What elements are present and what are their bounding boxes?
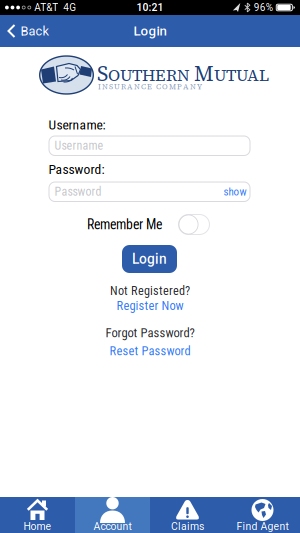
staticText: R — [121, 82, 126, 92]
staticText: Register Now — [116, 298, 183, 313]
staticText: Password — [54, 185, 101, 199]
staticText: C — [141, 82, 146, 92]
staticText: Username: — [48, 117, 105, 133]
staticText: U — [114, 82, 120, 92]
staticText: Reset Password — [109, 344, 190, 358]
staticText: 96% — [254, 2, 273, 13]
staticText: Find Agent — [236, 520, 288, 533]
staticText: A — [127, 82, 133, 92]
staticText: AT&T — [34, 2, 58, 13]
staticText: N — [134, 82, 140, 92]
button[interactable]: Login — [122, 245, 177, 273]
button[interactable]: Back — [0, 15, 54, 47]
staticText: A — [183, 82, 189, 92]
staticText: SOUTHERN MUTUAL — [97, 59, 269, 88]
staticText: N — [190, 82, 196, 92]
staticText: 10:21 — [136, 1, 163, 14]
staticText: P — [177, 82, 182, 92]
staticText: Login — [132, 251, 167, 267]
button[interactable]: Home — [0, 497, 75, 533]
staticText: S — [109, 82, 113, 92]
button[interactable]: Claims — [150, 497, 225, 533]
staticText: E — [147, 82, 152, 92]
staticText: M — [169, 82, 176, 92]
staticText: Account — [93, 520, 131, 533]
button[interactable]: Account — [75, 497, 150, 533]
staticText: Forgot Password? — [105, 325, 194, 340]
button[interactable]: Reset Password — [106, 341, 193, 361]
button[interactable]: Remember Me — [178, 214, 210, 235]
button[interactable]: Register Now — [113, 295, 186, 316]
staticText: C — [156, 82, 161, 92]
staticText: Not Registered? — [110, 284, 190, 298]
staticText: Remember Me — [87, 216, 162, 233]
staticText: Y — [197, 82, 202, 92]
staticText: show — [223, 185, 246, 198]
staticText: I — [98, 82, 101, 92]
staticText: Login — [133, 23, 166, 39]
staticText: Claims — [171, 520, 204, 533]
staticText: Back — [20, 23, 48, 38]
staticText: N — [102, 82, 108, 92]
staticText: O — [162, 82, 168, 92]
staticText: Home — [23, 520, 51, 533]
button[interactable]: Find Agent — [225, 497, 300, 533]
staticText: Username — [54, 139, 103, 153]
staticText: Password: — [48, 161, 104, 177]
button[interactable]: show — [223, 185, 250, 198]
staticText: 4G — [63, 2, 76, 13]
